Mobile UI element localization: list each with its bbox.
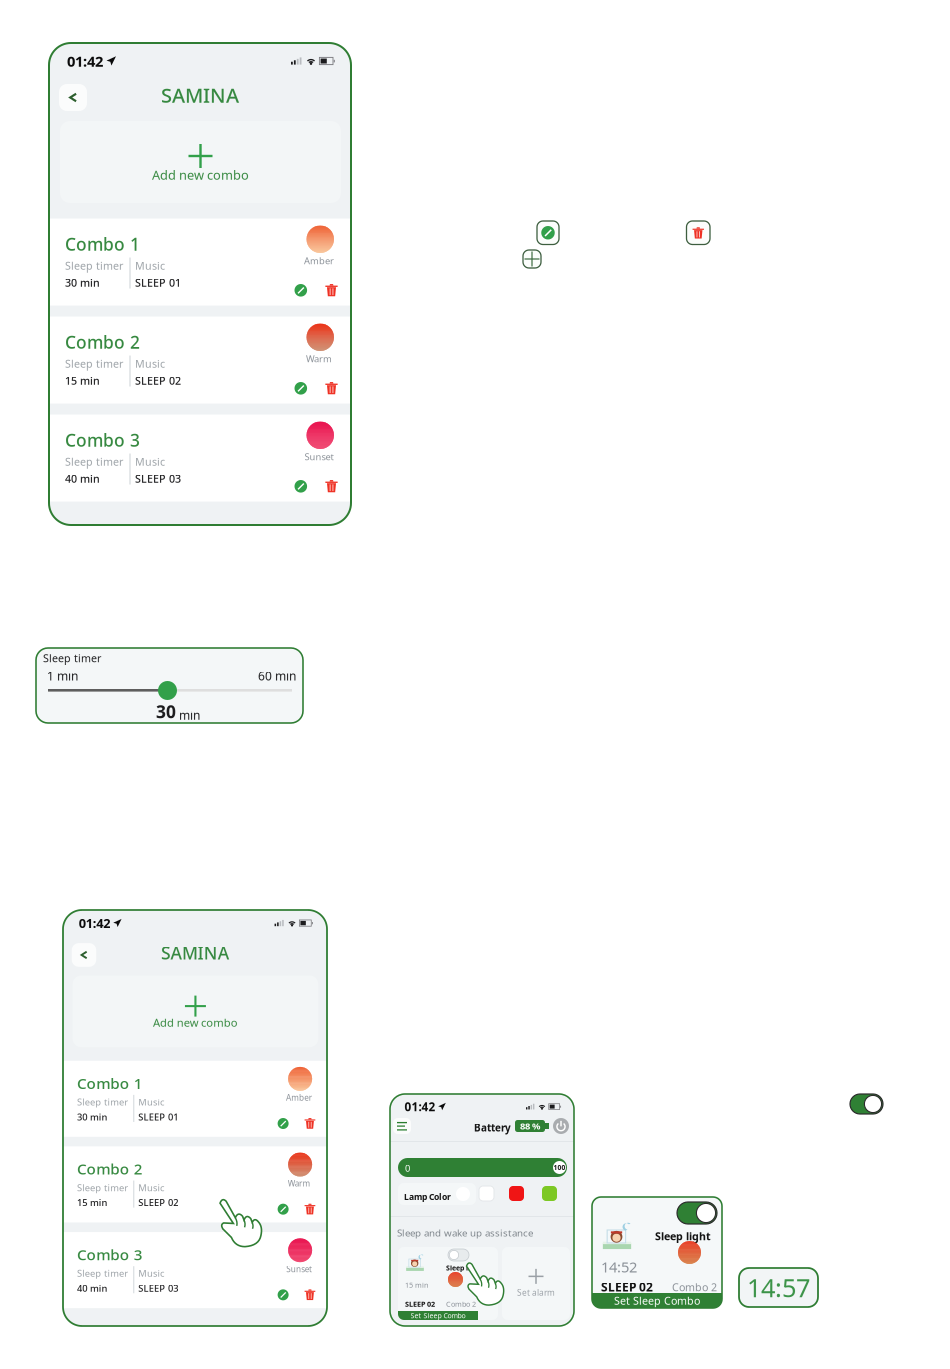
staticText: 88 %: [520, 1120, 540, 1132]
button[interactable]: Power: [553, 1118, 569, 1134]
staticText: Combo 1: [79, 1097, 154, 1120]
staticText: Combo 2: [79, 1195, 154, 1218]
staticText: Sunset: [318, 1315, 347, 1327]
button[interactable]: Sleep light off: [448, 1249, 469, 1261]
button[interactable]: Combo 2: [49, 316, 351, 403]
staticText: Sleep light: [655, 1229, 711, 1243]
staticText: 100: [553, 1163, 565, 1172]
staticText: Combo 3: [65, 428, 140, 451]
button[interactable]: Back: [73, 948, 101, 975]
staticText: 15 min: [405, 1280, 428, 1290]
button[interactable]: Add new combo: [60, 121, 341, 203]
button[interactable]: Set Sleep Combo: [398, 1311, 478, 1320]
staticText: Sleep and wake up assistance: [397, 1226, 533, 1239]
staticText: Warm: [320, 1217, 346, 1229]
staticText: Combo 2: [672, 1280, 717, 1294]
button[interactable]: Edit Combo 3: [294, 480, 307, 493]
staticText: SLEEP 03: [135, 471, 181, 486]
button[interactable]: Add combo: [523, 250, 541, 268]
staticText: 15 min: [65, 373, 100, 388]
staticText: SLEEP 02: [405, 1299, 435, 1309]
button[interactable]: Set alarm: [502, 1247, 570, 1320]
button[interactable]: Sleep timer slider: [48, 681, 292, 700]
button[interactable]: Combo 3: [49, 414, 351, 501]
button[interactable]: Combo 2: [63, 1181, 365, 1268]
button[interactable]: White lamp colour: [479, 1186, 494, 1201]
staticText: 01:42: [404, 1099, 435, 1115]
button[interactable]: Edit Combo 2: [308, 1246, 321, 1259]
staticText: SLEEP 02: [601, 1279, 653, 1295]
button[interactable]: Red lamp colour: [509, 1186, 524, 1201]
staticText: SLEEP 02: [135, 373, 181, 388]
staticText: 0: [405, 1162, 410, 1174]
staticText: Combo 3: [79, 1293, 154, 1316]
staticText: Lamp Color: [404, 1191, 451, 1203]
button[interactable]: Set Sleep Combo: [592, 1293, 722, 1308]
staticText: min: [179, 707, 200, 723]
staticText: Combo 2: [446, 1299, 476, 1309]
staticText: 15 min: [79, 1238, 114, 1252]
button[interactable]: Sleep light on: [677, 1202, 717, 1224]
staticText: Music: [135, 356, 165, 371]
staticText: 30 min: [65, 275, 100, 290]
staticText: 1 min: [47, 668, 78, 684]
staticText: Sunset: [304, 450, 333, 463]
staticText: Music: [135, 454, 165, 469]
staticText: Sleep timer: [65, 258, 123, 273]
staticText: Music: [135, 258, 165, 273]
button[interactable]: Edit Combo 1: [308, 1148, 321, 1161]
staticText: Combo 2: [65, 330, 140, 353]
staticText: Sleep timer: [79, 1319, 137, 1333]
button[interactable]: Sleep light on: [850, 1094, 883, 1114]
staticText: Sleep timer: [65, 356, 123, 371]
button[interactable]: Edit combo: [537, 221, 559, 244]
staticText: Set alarm: [517, 1287, 555, 1298]
staticText: 01:42: [81, 915, 117, 935]
staticText: Amber: [304, 254, 334, 267]
staticText: SLEEP 01: [135, 275, 181, 290]
button[interactable]: Delete Combo 3: [324, 479, 338, 493]
staticText: 30: [156, 700, 176, 723]
staticText: Sleep timer: [65, 454, 123, 469]
staticText: Combo 1: [65, 232, 140, 255]
button[interactable]: Edit Combo 1: [294, 284, 307, 297]
button[interactable]: Combo 1: [49, 218, 351, 305]
staticText: Add new combo: [152, 166, 249, 183]
staticText: Warm: [306, 352, 332, 365]
staticText: 14:52: [601, 1257, 637, 1276]
staticText: Set Sleep Combo: [614, 1293, 700, 1308]
button[interactable]: Add new combo: [74, 985, 355, 1067]
button[interactable]: Edit Combo 2: [294, 382, 307, 395]
staticText: Set Sleep Combo: [410, 1311, 465, 1320]
staticText: SAMINA: [175, 946, 253, 973]
button[interactable]: Back: [59, 84, 87, 111]
button[interactable]: Combo 1: [63, 1083, 365, 1170]
button[interactable]: Delete Combo 2: [324, 381, 338, 395]
staticText: 40 min: [65, 471, 100, 486]
button[interactable]: Green lamp colour: [542, 1186, 557, 1201]
staticText: 01:42: [67, 51, 103, 71]
button[interactable]: Menu: [393, 1118, 411, 1134]
staticText: Music: [149, 1319, 179, 1333]
staticText: Sleep timer: [79, 1221, 137, 1235]
staticText: SAMINA: [161, 82, 239, 108]
staticText: Music: [149, 1221, 179, 1235]
staticText: Sleep li: [446, 1263, 470, 1272]
button[interactable]: Combo 3: [63, 1279, 365, 1366]
staticText: Battery: [474, 1121, 511, 1134]
button[interactable]: Delete Combo 1: [324, 283, 338, 297]
staticText: 60 min: [258, 668, 296, 684]
staticText: 14:57: [747, 1271, 810, 1304]
staticText: Amber: [318, 1119, 348, 1131]
button[interactable]: Delete combo: [686, 221, 710, 244]
